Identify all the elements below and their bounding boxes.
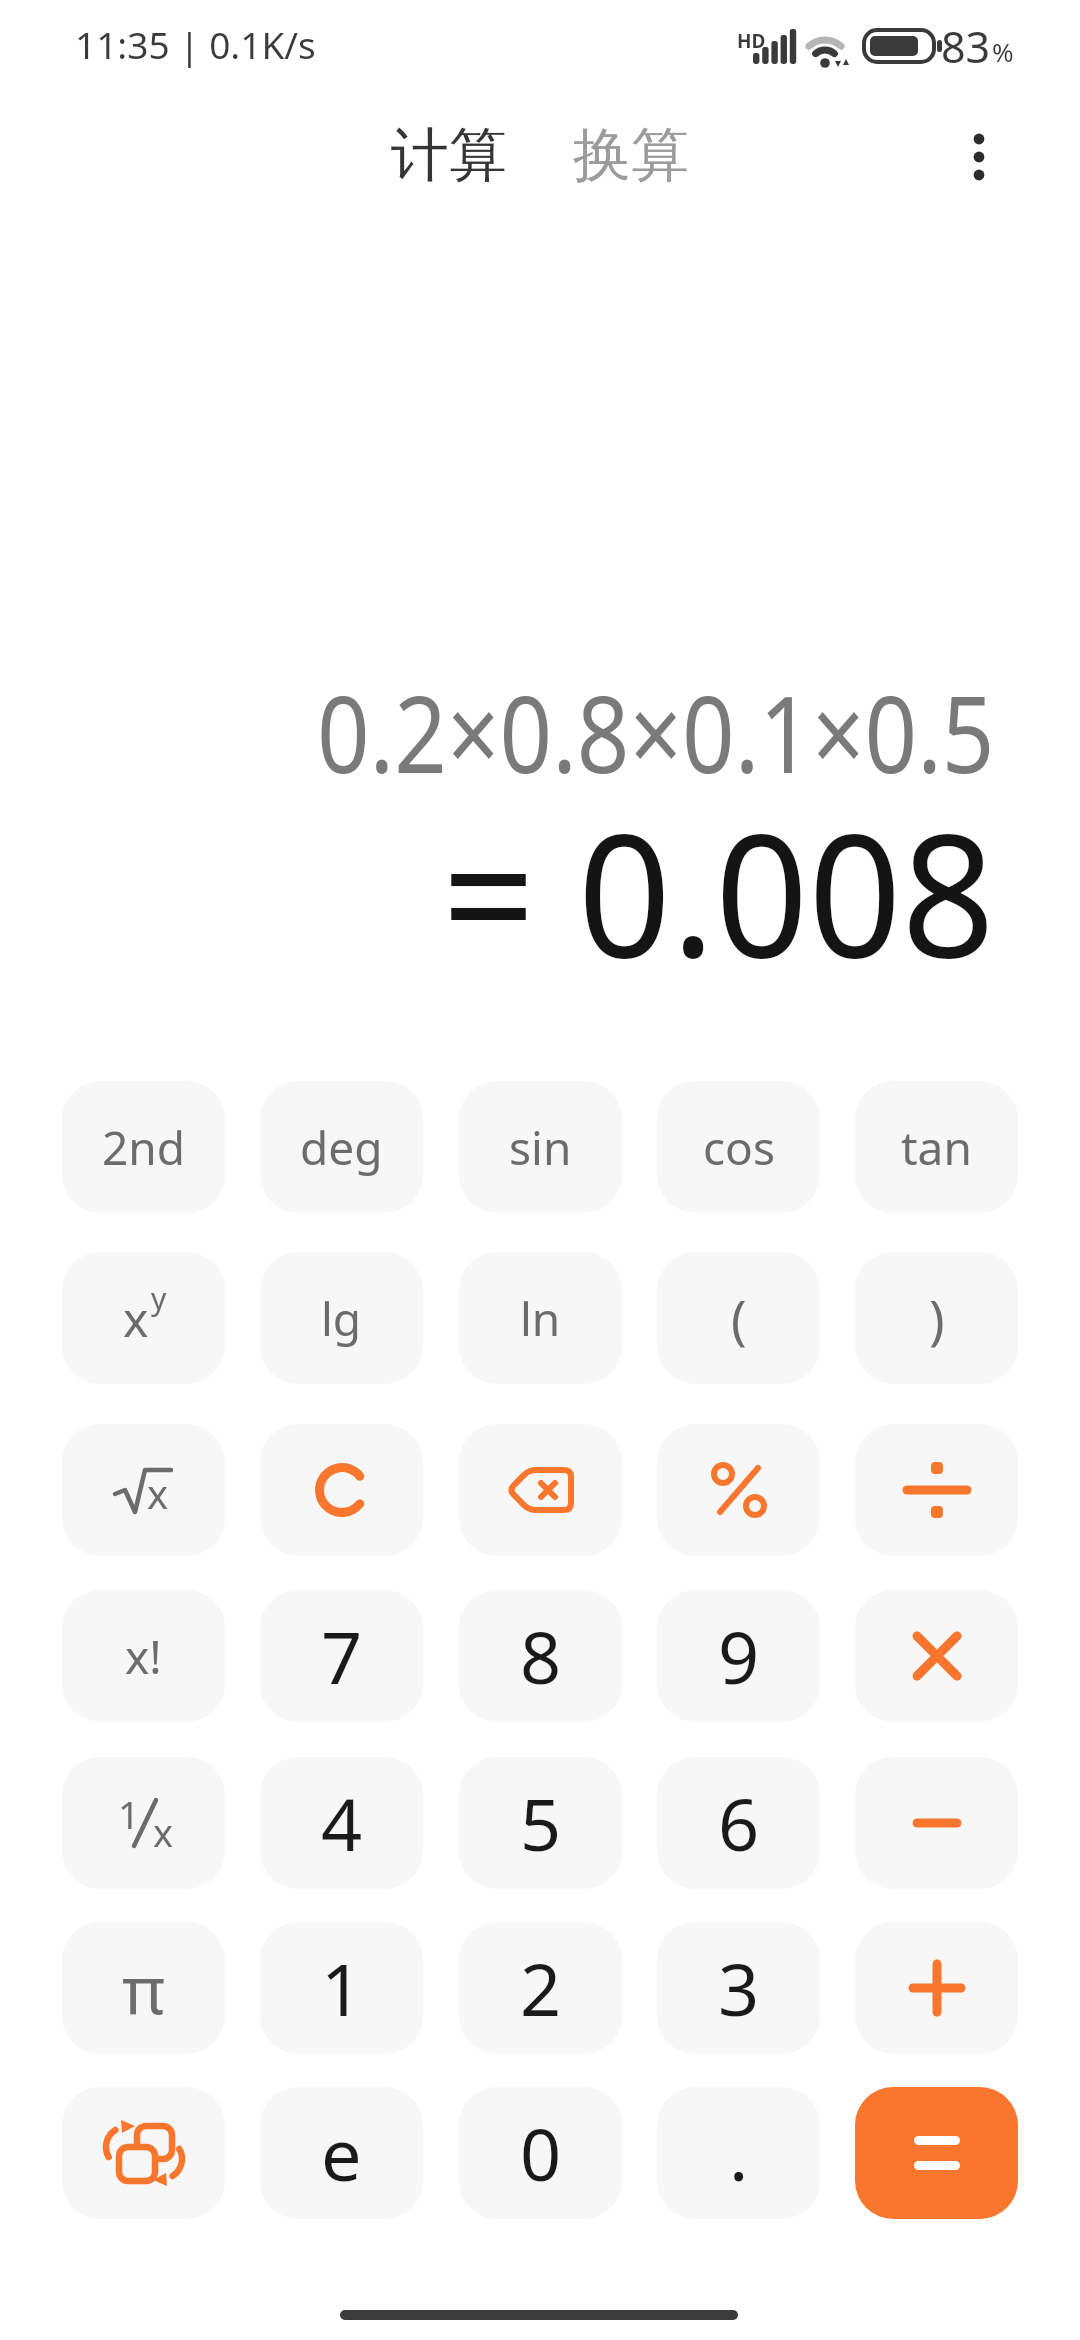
staticText: cos xyxy=(703,1116,775,1179)
button[interactable]: ( xyxy=(657,1252,820,1384)
staticText: 7 xyxy=(321,1607,363,1705)
staticText: 0.2×0.8×0.1×0.5 xyxy=(317,661,995,804)
staticText: 2 xyxy=(520,1939,562,2037)
button[interactable]: 0 xyxy=(459,2087,622,2219)
button[interactable]: lg xyxy=(260,1252,423,1384)
button[interactable] xyxy=(657,1424,820,1556)
staticText: deg xyxy=(300,1116,383,1179)
staticText: 3 xyxy=(718,1939,760,2037)
staticText: ln xyxy=(520,1287,561,1350)
button[interactable]: tan xyxy=(855,1081,1018,1213)
button[interactable]: 7 xyxy=(260,1590,423,1722)
button[interactable]: x xyxy=(62,1252,225,1384)
staticText: lg xyxy=(321,1287,362,1350)
button[interactable]: 4 xyxy=(260,1757,423,1889)
button[interactable]: 计算 xyxy=(391,119,507,192)
staticText: 计算 xyxy=(391,119,507,192)
staticText: % xyxy=(992,34,1014,69)
staticText: 4 xyxy=(321,1774,363,1872)
button[interactable]: 9 xyxy=(657,1590,820,1722)
button[interactable] xyxy=(855,1424,1018,1556)
staticText: 1 xyxy=(321,1939,363,2037)
button[interactable]: sin xyxy=(459,1081,622,1213)
button[interactable] xyxy=(855,1590,1018,1722)
staticText: 2nd xyxy=(102,1116,186,1179)
staticText: x xyxy=(123,1286,149,1351)
staticText: 0 xyxy=(520,2104,562,2202)
staticText: 1 xyxy=(118,1788,140,1840)
button[interactable]: 8 xyxy=(459,1590,622,1722)
staticText: 6 xyxy=(718,1774,760,1872)
staticText: π xyxy=(122,1943,166,2033)
button[interactable]: deg xyxy=(260,1081,423,1213)
button[interactable]: x xyxy=(62,1424,225,1556)
button[interactable]: 3 xyxy=(657,1922,820,2054)
button[interactable]: 1 xyxy=(260,1922,423,2054)
staticText: x! xyxy=(125,1625,162,1688)
button[interactable]: . xyxy=(657,2087,820,2219)
button[interactable]: ln xyxy=(459,1252,622,1384)
button[interactable]: 6 xyxy=(657,1757,820,1889)
staticText: sin xyxy=(509,1116,572,1179)
staticText: 9 xyxy=(718,1607,760,1705)
staticText: tan xyxy=(901,1116,972,1179)
staticText: y xyxy=(151,1278,167,1319)
staticText: 换算 xyxy=(573,119,689,192)
button[interactable]: 2nd xyxy=(62,1081,225,1213)
button[interactable] xyxy=(958,118,1000,192)
staticText: 83 xyxy=(941,17,991,76)
staticText: x xyxy=(147,1466,169,1520)
staticText: . xyxy=(729,2104,749,2202)
button[interactable]: π xyxy=(62,1922,225,2054)
button[interactable]: ) xyxy=(855,1252,1018,1384)
staticText: ( xyxy=(731,1283,747,1354)
button[interactable]: 换算 xyxy=(573,119,689,192)
button[interactable] xyxy=(855,1922,1018,2054)
staticText: 5 xyxy=(520,1774,562,1872)
button[interactable] xyxy=(855,2087,1018,2219)
staticText: x xyxy=(153,1806,174,1858)
staticText: 8 xyxy=(520,1607,562,1705)
staticText: e xyxy=(321,2104,362,2202)
button[interactable] xyxy=(855,1757,1018,1889)
staticText: ) xyxy=(929,1283,945,1354)
staticText: = 0.008 xyxy=(442,775,995,1007)
button[interactable]: cos xyxy=(657,1081,820,1213)
staticText: HD xyxy=(737,28,766,54)
button[interactable] xyxy=(260,1424,423,1556)
button[interactable] xyxy=(459,1424,622,1556)
button[interactable]: 1 xyxy=(62,1757,225,1889)
button[interactable] xyxy=(62,2087,225,2219)
button[interactable]: 2 xyxy=(459,1922,622,2054)
staticText: 11:35 | 0.1K/s xyxy=(75,19,316,69)
button[interactable]: x! xyxy=(62,1590,225,1722)
button[interactable]: e xyxy=(260,2087,423,2219)
button[interactable]: 5 xyxy=(459,1757,622,1889)
